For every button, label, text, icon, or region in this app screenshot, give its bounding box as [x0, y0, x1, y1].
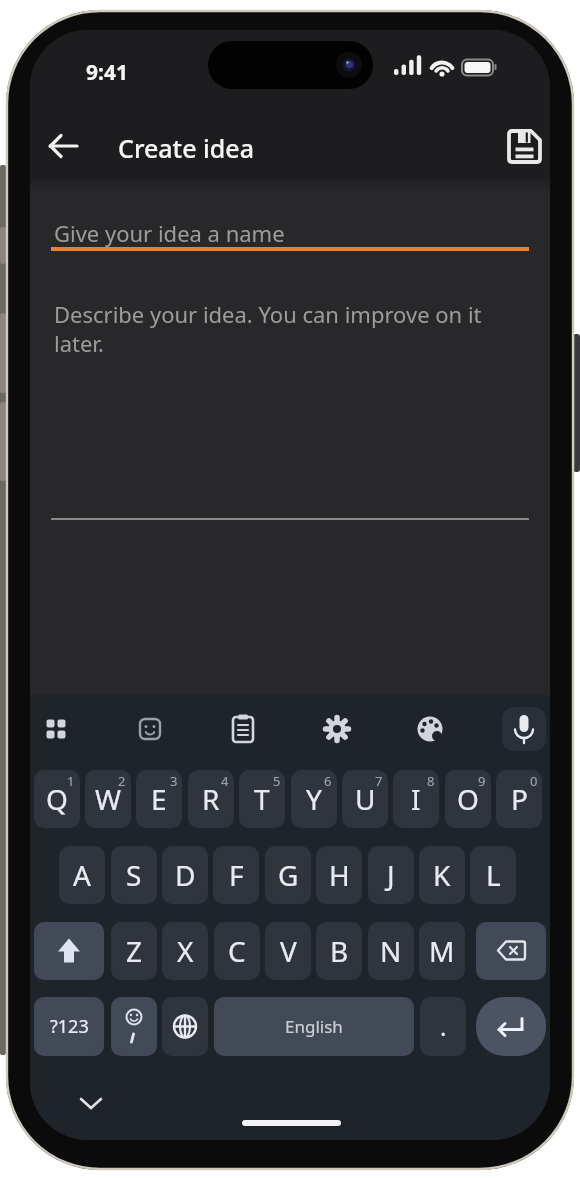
button[interactable]: C — [214, 922, 260, 980]
staticText: A — [73, 856, 91, 894]
button[interactable]: N — [368, 922, 414, 980]
staticText: P — [511, 780, 528, 818]
button[interactable]: B — [316, 922, 362, 980]
staticText: E — [151, 780, 167, 818]
staticText: Q — [46, 780, 68, 818]
button[interactable]: English — [214, 997, 414, 1056]
staticText: L — [486, 856, 501, 894]
staticText: 3 — [170, 772, 178, 790]
staticText: 8 — [427, 772, 435, 790]
button[interactable]: M — [419, 922, 465, 980]
staticText: R — [202, 780, 220, 818]
button[interactable]: Z — [111, 922, 157, 980]
button[interactable]: A — [59, 846, 105, 904]
button[interactable]: K — [419, 846, 465, 904]
button[interactable]: W — [85, 770, 131, 828]
staticText: U — [355, 780, 376, 818]
staticText: 9:41 — [86, 58, 128, 87]
staticText: F — [229, 856, 244, 894]
staticText: S — [126, 856, 142, 894]
button[interactable]: R — [188, 770, 234, 828]
button[interactable]: I — [393, 770, 439, 828]
button[interactable] — [44, 126, 84, 166]
staticText: T — [254, 780, 270, 818]
staticText: D — [175, 856, 196, 894]
button[interactable]: X — [162, 922, 208, 980]
staticText: N — [380, 932, 402, 970]
staticText: M — [429, 932, 455, 970]
staticText: J — [387, 856, 395, 894]
button[interactable]: L — [470, 846, 516, 904]
staticText: H — [329, 856, 350, 894]
staticText: O — [457, 780, 479, 818]
staticText: ?123 — [50, 1014, 89, 1039]
button[interactable]: Q — [34, 770, 80, 828]
button[interactable]: Describe your idea. You can improve on i… — [54, 299, 524, 358]
staticText: 4 — [221, 772, 229, 790]
button[interactable]: E — [136, 770, 182, 828]
staticText: English — [285, 1015, 343, 1038]
staticText: 2 — [118, 772, 126, 790]
button[interactable] — [476, 997, 546, 1056]
button[interactable]: G — [265, 846, 311, 904]
staticText: Z — [126, 932, 143, 970]
staticText: V — [280, 932, 297, 970]
button[interactable] — [476, 922, 546, 980]
button[interactable]: Give your idea a name — [54, 218, 285, 248]
button[interactable]: H — [316, 846, 362, 904]
button[interactable]: P — [496, 770, 542, 828]
button[interactable]: O — [445, 770, 491, 828]
button[interactable]: . — [420, 997, 466, 1056]
button[interactable]: T — [239, 770, 285, 828]
button[interactable] — [506, 128, 540, 162]
button[interactable] — [74, 1088, 108, 1118]
staticText: G — [278, 856, 299, 894]
staticText: 6 — [324, 772, 332, 790]
staticText: . — [440, 1010, 447, 1043]
staticText: Y — [306, 780, 322, 818]
staticText: W — [95, 780, 122, 818]
button[interactable] — [111, 997, 157, 1056]
button[interactable]: D — [162, 846, 208, 904]
button[interactable] — [38, 707, 82, 751]
staticText: 7 — [375, 772, 383, 790]
staticText: K — [433, 856, 451, 894]
staticText: 1 — [67, 772, 75, 790]
button[interactable]: U — [342, 770, 388, 828]
button[interactable] — [162, 997, 208, 1056]
staticText: 9 — [478, 772, 486, 790]
staticText: 5 — [273, 772, 281, 790]
button[interactable]: Y — [291, 770, 337, 828]
button[interactable] — [34, 922, 104, 980]
button[interactable]: V — [265, 922, 311, 980]
staticText: X — [177, 932, 194, 970]
staticText: Create idea — [118, 131, 254, 165]
button[interactable]: F — [213, 846, 259, 904]
staticText: B — [330, 932, 349, 970]
staticText: 0 — [530, 772, 538, 790]
button[interactable]: S — [111, 846, 157, 904]
button[interactable] — [502, 707, 546, 751]
staticText: I — [411, 780, 421, 818]
staticText: C — [228, 932, 246, 970]
button[interactable]: J — [368, 846, 414, 904]
button[interactable]: ?123 — [34, 997, 104, 1056]
